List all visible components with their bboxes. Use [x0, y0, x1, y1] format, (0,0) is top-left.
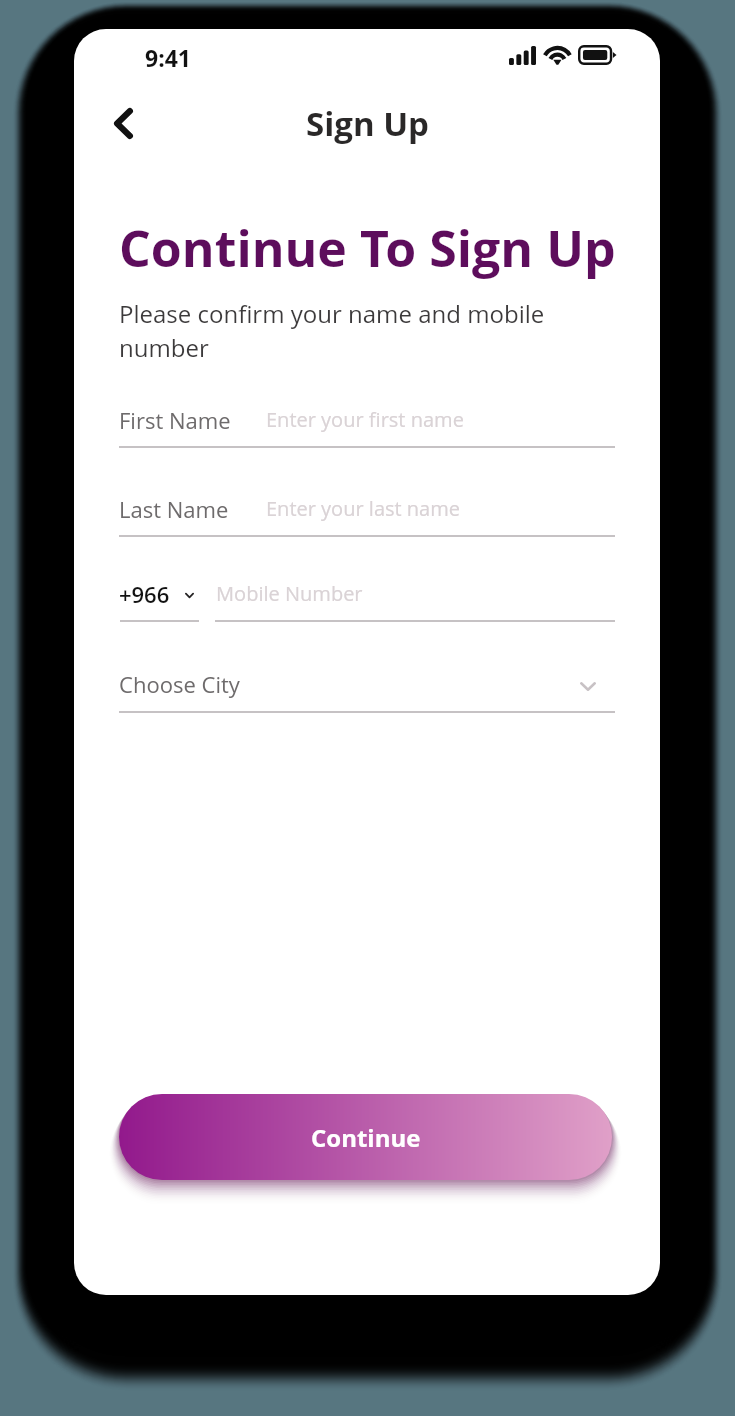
staticText: Continue To Sign Up: [119, 214, 616, 282]
button[interactable]: [119, 572, 615, 622]
staticText: Mobile Number: [216, 580, 363, 607]
button[interactable]: [119, 487, 615, 537]
button[interactable]: Choose City: [119, 663, 615, 713]
staticText: +966: [119, 579, 170, 609]
staticText: 9:41: [145, 42, 191, 73]
button[interactable]: Continue: [119, 1094, 612, 1180]
staticText: Enter your last name: [266, 495, 461, 522]
button[interactable]: Back: [95, 95, 152, 152]
staticText: Please confirm your name and mobile numb…: [119, 297, 559, 364]
staticText: Choose City: [119, 669, 240, 699]
staticText: Enter your first name: [266, 406, 464, 433]
button[interactable]: [119, 398, 615, 448]
staticText: First Name: [119, 405, 231, 435]
staticText: Sign Up: [306, 101, 429, 146]
staticText: Last Name: [119, 494, 229, 524]
staticText: Continue: [311, 1121, 421, 1154]
